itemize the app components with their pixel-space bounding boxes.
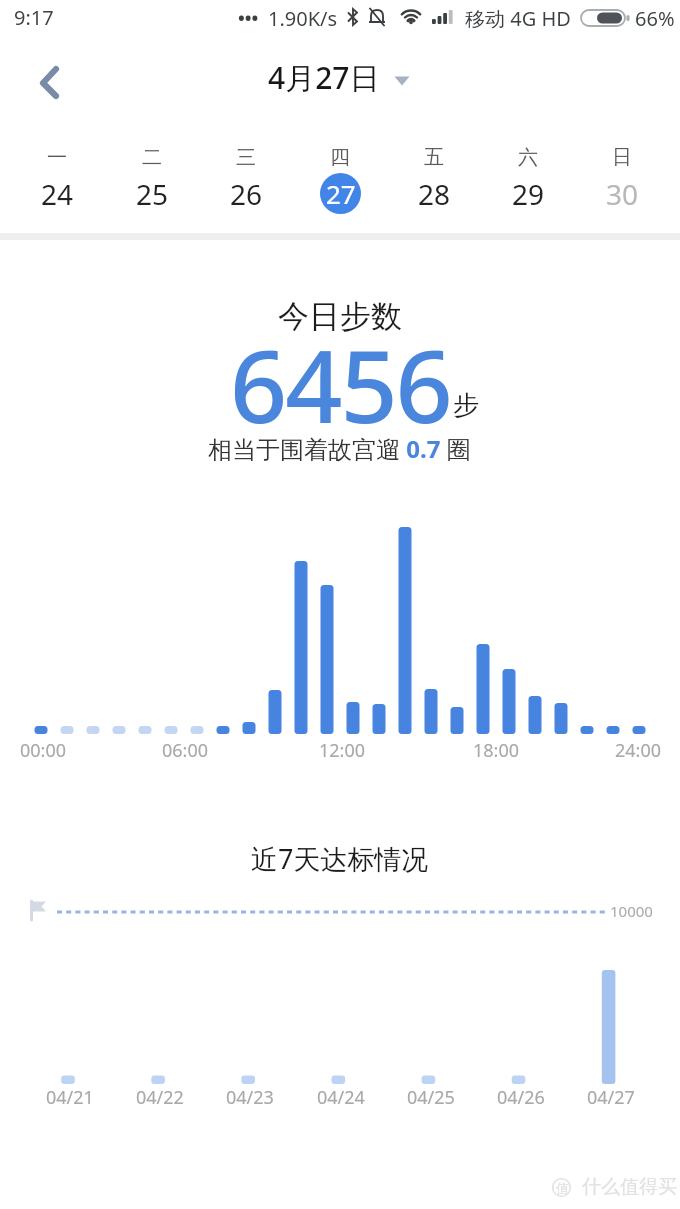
button[interactable]: 27 — [320, 173, 361, 214]
staticText: 04/24 — [317, 1085, 365, 1110]
staticText: 10000 — [610, 901, 653, 921]
staticText: 04/22 — [136, 1085, 184, 1110]
staticText: 26 — [230, 175, 263, 213]
staticText: 值 — [556, 1180, 569, 1196]
button[interactable]: 28 — [409, 173, 459, 214]
staticText: 4月27日 — [268, 57, 380, 98]
staticText: 04/27 — [587, 1085, 635, 1110]
staticText: 04/26 — [497, 1085, 545, 1110]
staticText: 近7天达标情况 — [251, 840, 429, 877]
staticText: 04/25 — [407, 1085, 455, 1110]
button[interactable]: 24 — [32, 173, 82, 214]
button[interactable]: 29 — [503, 173, 553, 214]
staticText: 一 — [47, 145, 67, 170]
staticText: 五 — [424, 145, 444, 170]
staticText: 移动 4G HD — [465, 5, 571, 32]
staticText: 今日步数 — [278, 297, 402, 336]
staticText: 相当于围着故宫遛 0.7 圈 — [208, 432, 471, 465]
staticText: 日 — [612, 145, 632, 170]
button[interactable]: 26 — [221, 173, 271, 214]
staticText: 04/21 — [46, 1085, 94, 1110]
staticText: 29 — [512, 175, 545, 213]
button[interactable] — [24, 55, 74, 111]
staticText: 六 — [518, 145, 538, 170]
staticText: 24 — [41, 175, 74, 213]
staticText: 24:00 — [615, 738, 662, 763]
button[interactable]: 30 — [597, 173, 647, 214]
staticText: 27 — [326, 176, 356, 211]
button[interactable]: 25 — [127, 173, 177, 214]
staticText: 18:00 — [473, 738, 520, 763]
staticText: 04/23 — [226, 1085, 274, 1110]
staticText: ••• — [238, 6, 259, 31]
staticText: 6456 — [230, 316, 451, 452]
staticText: 1.90K/s — [268, 5, 338, 32]
staticText: 28 — [418, 175, 451, 213]
staticText: 步 — [453, 389, 479, 422]
staticText: 三 — [236, 145, 256, 170]
staticText: 什么值得买 — [582, 1175, 677, 1199]
staticText: 二 — [142, 145, 162, 170]
staticText: 四 — [330, 145, 350, 170]
staticText: 66% — [635, 5, 675, 32]
button[interactable]: 4月27日 — [268, 57, 410, 98]
staticText: 00:00 — [20, 738, 67, 763]
staticText: 30 — [606, 175, 639, 213]
staticText: 9:17 — [14, 4, 54, 31]
staticText: 12:00 — [319, 738, 366, 763]
staticText: 25 — [136, 175, 169, 213]
staticText: 06:00 — [162, 738, 209, 763]
